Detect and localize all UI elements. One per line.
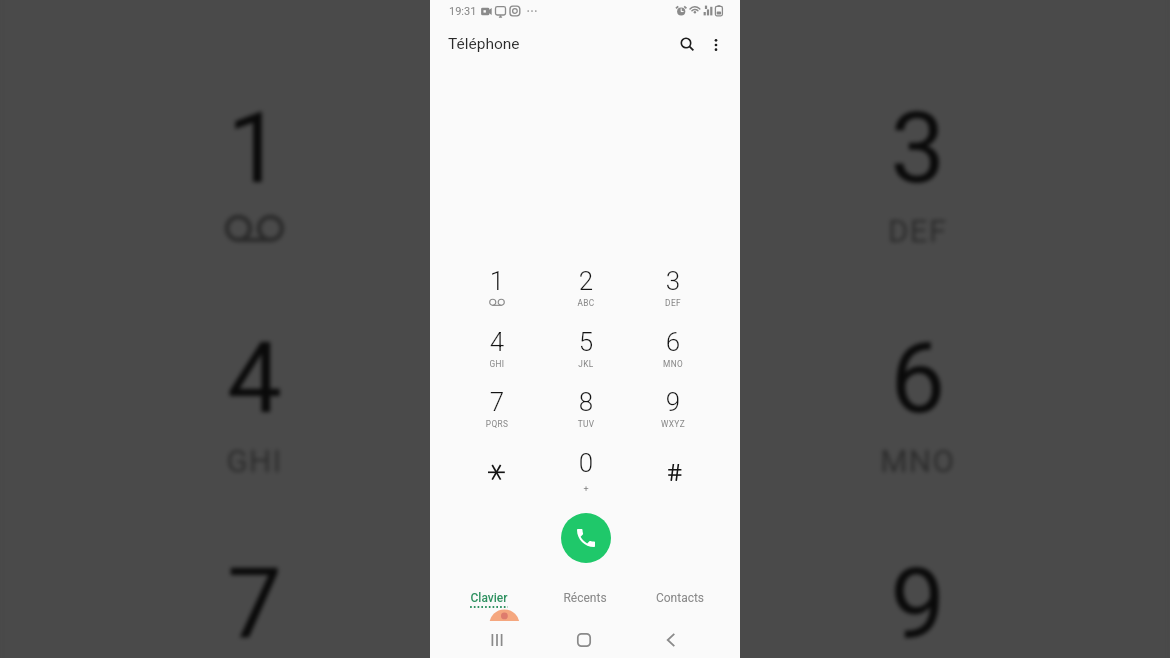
staticText: ABC [432,212,748,250]
staticText: MNO [631,359,715,369]
staticText: 8 [544,387,628,417]
button[interactable]: 6 [759,299,1076,517]
staticText: Récents [540,591,630,605]
staticText: 5 [432,321,748,435]
staticText: 2 [544,266,628,296]
staticText: JKL [432,442,748,480]
button[interactable]: 4 [96,299,413,517]
button[interactable]: 1 [455,260,539,318]
staticText: 5 [544,327,628,357]
staticText: 9 [759,548,1076,658]
staticText: 7 [455,387,539,417]
button[interactable]: 3 [759,69,1076,287]
button[interactable]: Clavier [444,588,534,616]
staticText: 9 [631,387,715,417]
button[interactable]: 0 [544,442,628,500]
staticText: PQRS [455,419,539,429]
button[interactable]: 7 [96,525,413,658]
button[interactable]: 9 [631,381,715,439]
button[interactable]: Star [455,451,539,509]
staticText: 4 [455,327,539,357]
staticText: TUV [544,419,628,429]
button[interactable]: Recent apps [475,624,519,656]
staticText: + [544,484,628,495]
button[interactable]: Pound [631,451,715,509]
staticText: 3 [631,266,715,296]
staticText: ABC [544,298,628,308]
button[interactable]: 9 [759,525,1076,658]
staticText: Téléphone [448,35,520,53]
button[interactable]: More options [698,27,734,63]
button[interactable]: 2 [544,260,628,318]
staticText: 1 [455,266,539,296]
button[interactable]: 7 [455,381,539,439]
button[interactable]: 1 [96,69,413,287]
staticText: 4 [96,321,413,435]
staticText: DEF [631,298,715,308]
button[interactable]: 8 [544,381,628,439]
button[interactable]: Contacts [635,588,725,616]
staticText: 1 [96,92,413,205]
button[interactable]: 2 [432,69,748,287]
staticText: 3 [759,92,1076,205]
button[interactable]: 3 [631,260,715,318]
button[interactable]: 5 [544,321,628,379]
button[interactable]: Search [668,25,704,61]
staticText: 6 [631,327,715,357]
staticText: GHI [455,359,539,369]
staticText: 0 [544,448,628,478]
staticText: 6 [759,321,1076,435]
button[interactable]: 8 [432,525,748,658]
staticText: 2 [432,92,748,205]
button[interactable]: Back [649,624,693,656]
button[interactable]: Call [561,513,611,563]
button[interactable]: Home [562,624,606,656]
staticText: Clavier [444,591,534,605]
button[interactable]: 6 [631,321,715,379]
staticText: 19:31 [449,5,477,18]
staticText: 7 [96,548,413,658]
staticText: MNO [759,442,1076,480]
staticText: WXYZ [631,419,715,429]
staticText: Contacts [635,591,725,605]
button[interactable]: 4 [455,321,539,379]
button[interactable]: Récents [540,588,630,616]
button[interactable]: 5 [432,299,748,517]
staticText: DEF [759,212,1076,250]
staticText: 8 [432,548,748,658]
staticText: JKL [544,359,628,369]
